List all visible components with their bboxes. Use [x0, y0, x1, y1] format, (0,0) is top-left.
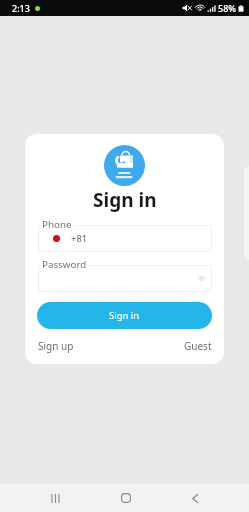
staticText: Phone: [42, 218, 72, 231]
button[interactable]: Sign up: [38, 339, 74, 353]
button[interactable]: Password: [38, 265, 212, 292]
other: Show password: [197, 274, 206, 283]
staticText: +81: [71, 232, 88, 245]
staticText: Sign in: [93, 187, 157, 213]
staticText: Sign up: [38, 339, 74, 353]
button[interactable]: Recent apps: [35, 484, 76, 512]
button[interactable]: Sign in: [37, 302, 212, 329]
staticText: 2:13: [12, 2, 30, 14]
staticText: Guest: [184, 339, 212, 353]
button[interactable]: Home: [105, 484, 146, 512]
button[interactable]: Phone: [38, 225, 212, 252]
staticText: Password: [42, 258, 87, 271]
staticText: 58%: [218, 2, 236, 14]
button[interactable]: Back: [174, 484, 215, 512]
staticText: Sign in: [109, 309, 140, 322]
button[interactable]: Guest: [184, 339, 212, 353]
